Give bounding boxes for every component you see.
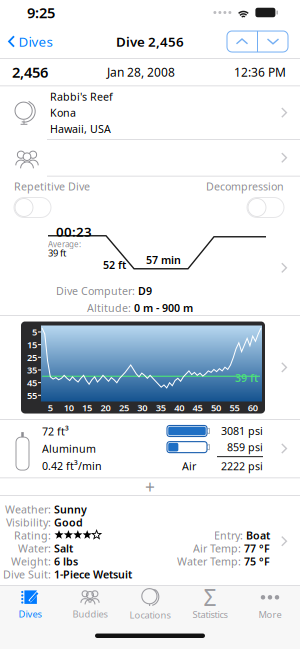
staticText: Boat (246, 528, 270, 542)
button[interactable]: More (240, 584, 300, 625)
staticText: 0 m - 900 m (134, 301, 193, 315)
staticText: 57 min (146, 253, 181, 267)
staticText: 00:23 (56, 223, 92, 240)
button[interactable]: Buddies (60, 585, 120, 624)
staticText: 35 (27, 364, 37, 376)
staticText: Average: (48, 239, 81, 249)
staticText: 25 (27, 351, 37, 363)
button[interactable]: Weather: (0, 496, 300, 583)
button[interactable]: Repetitive Dive (14, 197, 51, 217)
staticText: Good (54, 515, 83, 529)
staticText: + (145, 475, 155, 498)
staticText: Dive Suit: (3, 567, 51, 581)
staticText: 45 (192, 401, 202, 413)
button[interactable] (0, 140, 300, 176)
staticText: Weight: (11, 554, 51, 568)
staticText: Jan 28, 2008 (107, 64, 175, 80)
staticText: 40 (174, 401, 184, 413)
staticText: 5 (48, 401, 53, 413)
button[interactable]: 72 ft³ (0, 420, 300, 478)
staticText: 55 (229, 401, 239, 413)
staticText: Kona (50, 106, 76, 120)
staticText: 0.42 ft³/min (42, 459, 102, 473)
staticText: 12:36 PM (234, 64, 286, 80)
staticText: Altitude: (87, 301, 131, 315)
staticText: 20 (100, 401, 110, 413)
staticText: Air (182, 459, 196, 473)
staticText: 15 (82, 401, 92, 413)
staticText: Sunny (54, 502, 87, 516)
staticText: 15 (27, 338, 37, 351)
staticText: Entry: (214, 528, 243, 542)
staticText: 72 ft³ (42, 424, 69, 439)
button[interactable]: Decompression (247, 197, 284, 217)
staticText: Salt (54, 541, 73, 555)
staticText: Water Temp: (177, 554, 241, 568)
button[interactable]: 5 (0, 316, 300, 419)
staticText: Air Temp: (193, 541, 241, 555)
staticText: 50 (211, 401, 221, 413)
staticText: 30 (137, 401, 147, 413)
staticText: 75 °F (244, 554, 270, 568)
button[interactable]: Add (0, 478, 300, 495)
staticText: 35 (156, 401, 166, 413)
staticText: Decompression (206, 179, 284, 193)
button[interactable]: Dives (0, 585, 60, 624)
staticText: 52 ft (103, 258, 126, 272)
staticText: 77 °F (244, 541, 270, 555)
staticText: Buddies (72, 608, 107, 620)
staticText: Rating: (14, 528, 51, 542)
button[interactable]: Locations (120, 584, 180, 625)
staticText: 3081 psi (221, 424, 263, 438)
staticText: Aluminum (42, 441, 96, 456)
staticText: 9:25 (27, 3, 55, 22)
staticText: Hawaii, USA (50, 122, 111, 136)
button[interactable]: Next dive (258, 31, 288, 52)
staticText: 39 ft (235, 371, 258, 385)
staticText: 2,456 (12, 62, 48, 82)
staticText: Dive 2,456 (116, 33, 184, 50)
staticText: Locations (129, 609, 170, 621)
staticText: Dives (18, 33, 52, 50)
button[interactable]: Σ (180, 584, 240, 625)
staticText: 25 (119, 401, 129, 413)
staticText: Statistics (192, 608, 227, 621)
staticText: 10 (64, 401, 74, 413)
staticText: D9 (138, 284, 152, 298)
staticText: Σ (203, 582, 216, 612)
staticText: 6 lbs (54, 554, 78, 568)
staticText: 859 psi (227, 440, 263, 454)
staticText: 2222 psi (221, 459, 263, 473)
staticText: 55 (27, 389, 37, 401)
staticText: Dive Computer: (56, 284, 135, 298)
staticText: Repetitive Dive (14, 179, 90, 193)
staticText: More (258, 608, 281, 621)
button[interactable]: Rabbi's Reef (0, 86, 300, 139)
staticText: 45 (27, 376, 37, 389)
staticText: Rabbi's Reef (50, 89, 113, 104)
staticText: 1-Piece Wetsuit (54, 567, 132, 581)
staticText: 60 (248, 401, 258, 413)
staticText: Water: (18, 541, 51, 555)
button[interactable]: Dives (0, 28, 52, 55)
staticText: Dives (18, 608, 41, 620)
staticText: 39 ft (48, 247, 66, 259)
staticText: Weather: (5, 502, 51, 516)
staticText: 5 (32, 326, 37, 338)
button[interactable]: 00:23 (0, 220, 300, 315)
staticText: Visibility: (6, 515, 51, 529)
button[interactable]: Previous dive (227, 31, 257, 52)
